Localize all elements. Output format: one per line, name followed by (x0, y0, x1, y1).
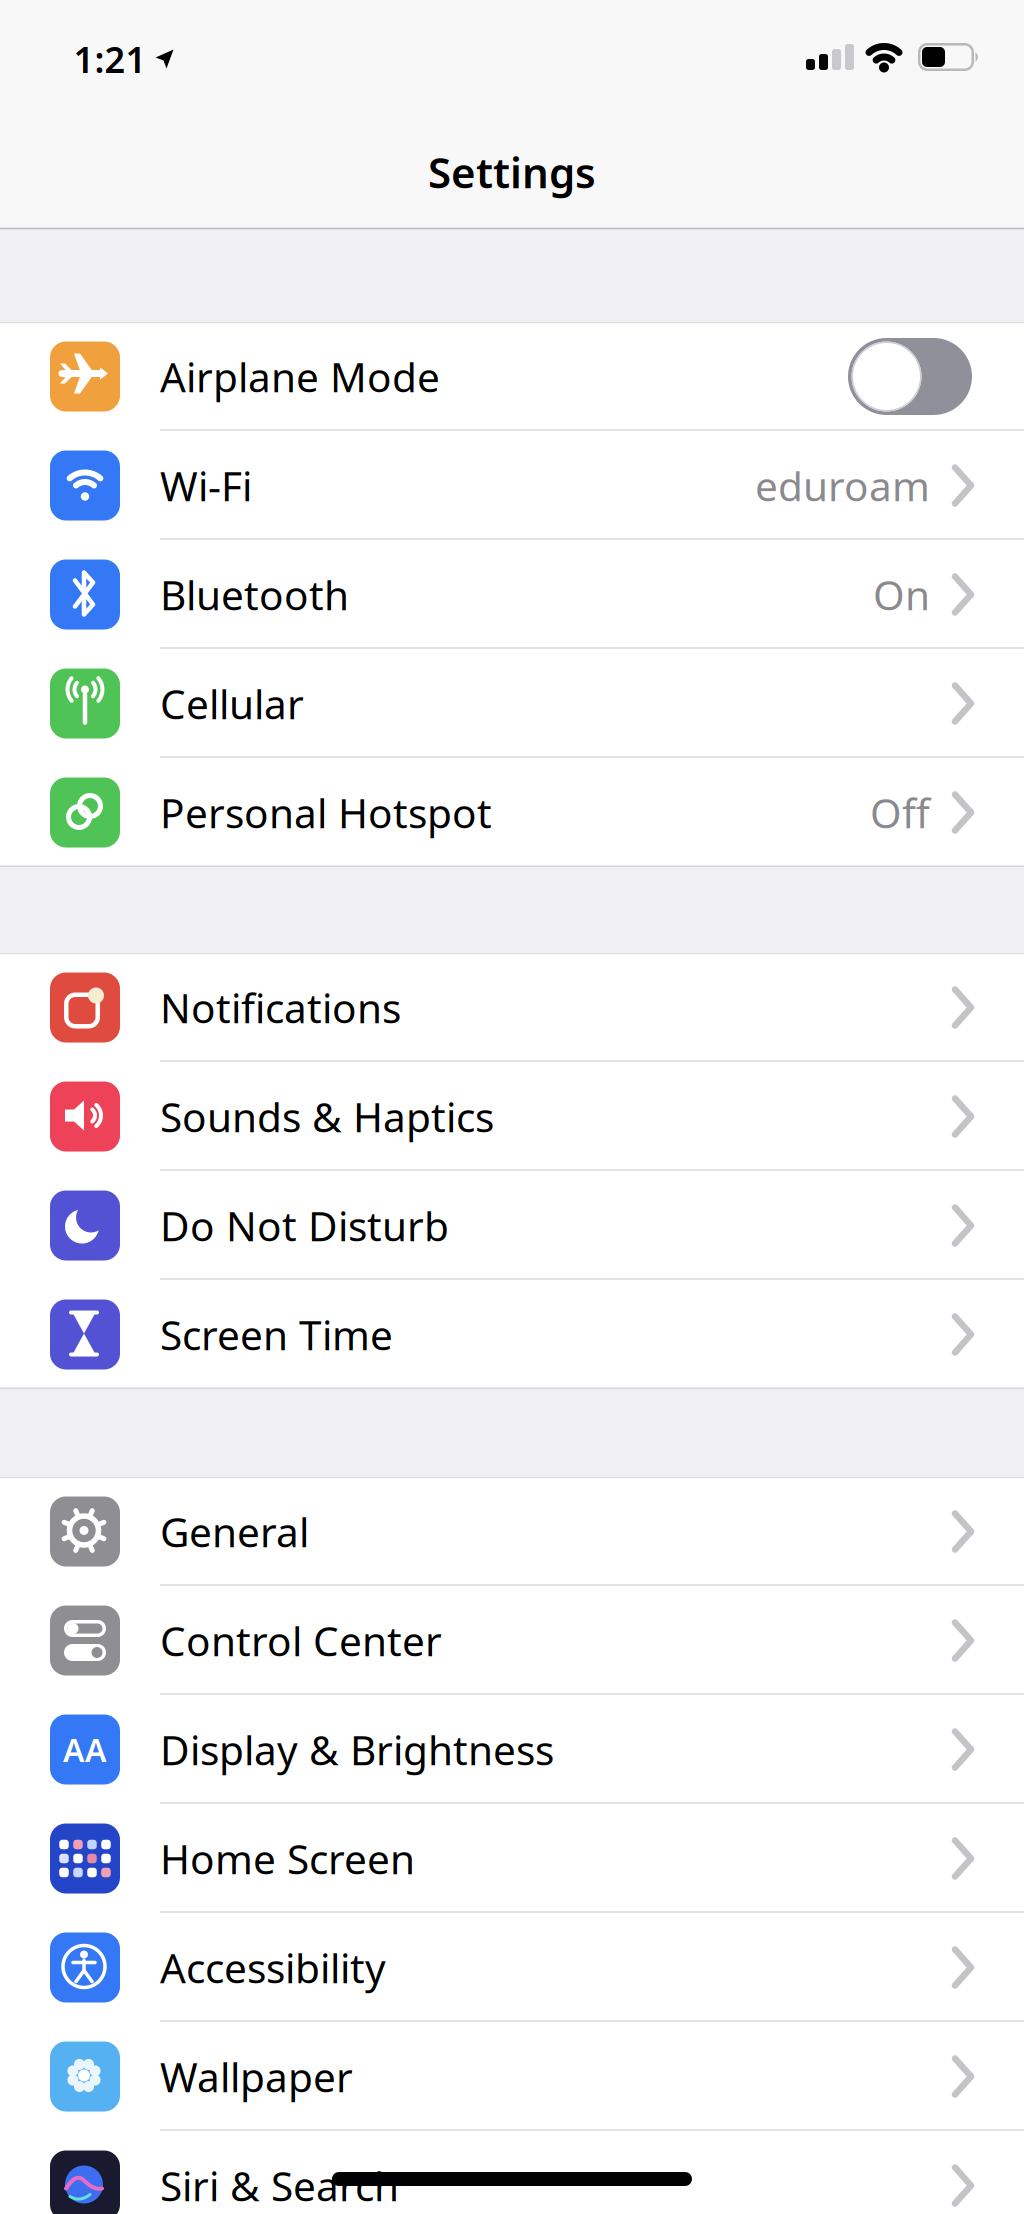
staticText: General (160, 1504, 309, 1559)
staticText: On (873, 567, 930, 622)
staticText: AA (63, 1728, 107, 1771)
button[interactable]: Do Not Disturb (0, 1171, 1024, 1280)
button[interactable]: Screen Time (0, 1280, 1024, 1389)
button[interactable]: Notifications (0, 953, 1024, 1062)
button[interactable]: Home Screen (0, 1804, 1024, 1913)
staticText: Wi-Fi (160, 458, 252, 513)
staticText: Cellular (160, 676, 304, 731)
button[interactable]: Sounds & Haptics (0, 1062, 1024, 1171)
staticText: Settings (428, 143, 596, 201)
button[interactable]: Siri & Search (0, 2131, 1024, 2214)
staticText: Accessibility (160, 1940, 386, 1995)
staticText: Off (870, 785, 930, 840)
staticText: Sounds & Haptics (160, 1089, 494, 1144)
button[interactable]: Personal Hotspot (0, 758, 1024, 867)
button[interactable]: Cellular (0, 649, 1024, 758)
staticText: Siri & Search (160, 2158, 399, 2213)
staticText: Do Not Disturb (160, 1198, 449, 1253)
staticText: Personal Hotspot (160, 785, 492, 840)
staticText: Home Screen (160, 1831, 415, 1886)
staticText: Control Center (160, 1613, 442, 1668)
staticText: Screen Time (160, 1307, 393, 1362)
button[interactable]: Airplane Mode (0, 322, 1024, 431)
staticText: eduroam (755, 458, 930, 513)
button[interactable]: Bluetooth (0, 540, 1024, 649)
button[interactable]: Accessibility (0, 1913, 1024, 2022)
staticText: Wallpaper (160, 2049, 353, 2104)
button[interactable]: Control Center (0, 1586, 1024, 1695)
button[interactable]: Wi-Fi (0, 431, 1024, 540)
staticText: Notifications (160, 980, 401, 1035)
button[interactable]: AA (0, 1695, 1024, 1804)
staticText: Airplane Mode (160, 349, 440, 404)
staticText: Bluetooth (160, 567, 349, 622)
staticText: 1:21 (73, 34, 146, 83)
button[interactable]: Wallpaper (0, 2022, 1024, 2131)
staticText: Display & Brightness (160, 1722, 554, 1777)
button[interactable]: General (0, 1477, 1024, 1586)
